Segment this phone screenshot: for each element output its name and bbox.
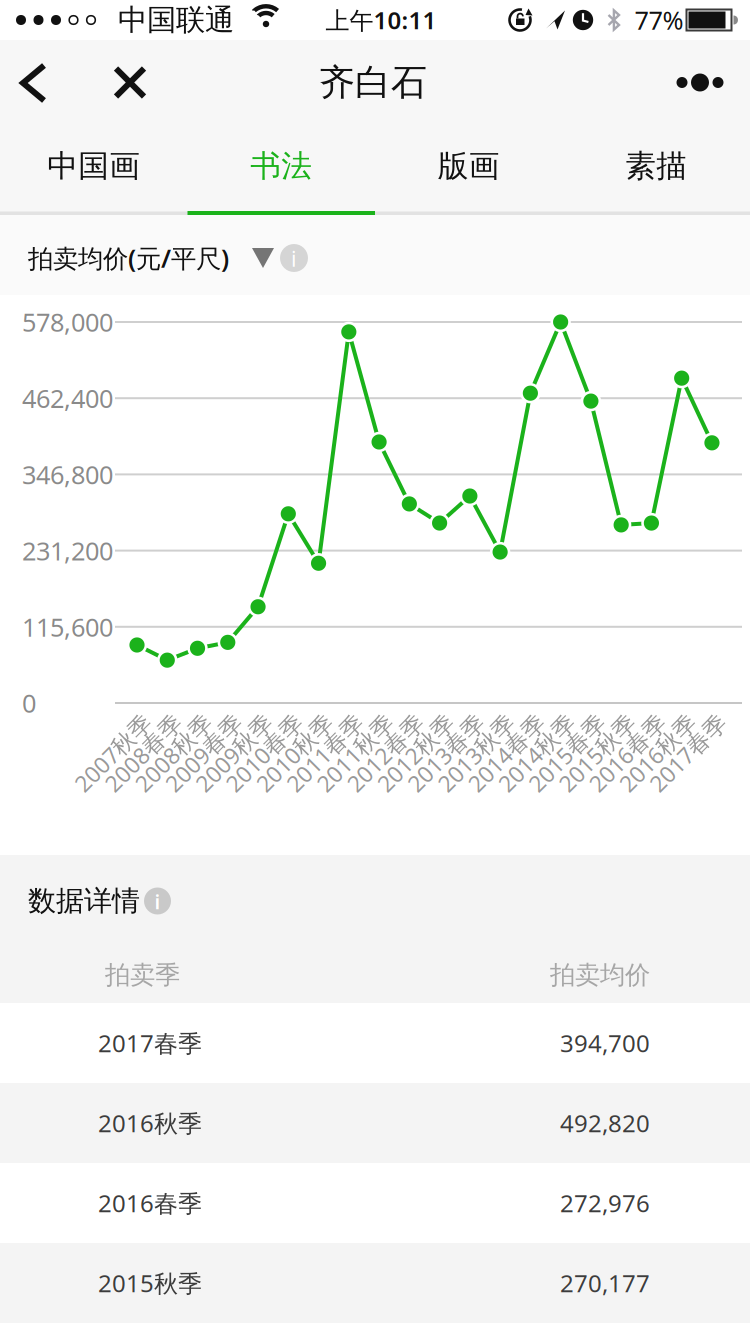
staticText: 2008秋季: [124, 738, 222, 768]
staticText: 上午10:11: [325, 4, 436, 36]
staticText: i: [291, 244, 297, 273]
staticText: 2014春季: [457, 738, 555, 768]
staticText: 书法: [250, 147, 312, 185]
staticText: 231,200: [22, 534, 113, 567]
staticText: 2011秋季: [306, 738, 404, 768]
staticText: 2014秋季: [488, 738, 586, 768]
staticText: 2010春季: [215, 738, 313, 768]
staticText: 数据详情: [28, 884, 140, 918]
staticText: 2013秋季: [427, 738, 525, 768]
staticText: 中国联通: [118, 2, 234, 38]
button[interactable]: More: [675, 57, 725, 107]
button[interactable]: 版画: [375, 125, 562, 207]
staticText: 2016春季: [98, 1187, 202, 1219]
staticText: 492,820: [560, 1107, 650, 1139]
button[interactable]: Back: [11, 57, 61, 107]
staticText: 2007秋季: [64, 738, 162, 768]
staticText: 578,000: [22, 305, 113, 339]
staticText: 115,600: [22, 610, 113, 644]
staticText: 2009春季: [155, 738, 253, 768]
staticText: 0: [22, 686, 36, 720]
button[interactable]: 中国画: [0, 125, 187, 207]
staticText: 462,400: [22, 381, 113, 415]
staticText: 2015春季: [518, 738, 616, 768]
staticText: 2016秋季: [609, 738, 707, 768]
staticText: 77%: [634, 3, 683, 37]
button[interactable]: 素描: [562, 125, 750, 207]
staticText: 2015秋季: [98, 1267, 202, 1299]
staticText: i: [154, 888, 160, 915]
staticText: 346,800: [22, 458, 113, 491]
staticText: 2012秋季: [367, 738, 465, 768]
staticText: 2009秋季: [185, 738, 283, 768]
staticText: 2013春季: [397, 738, 495, 768]
staticText: 270,177: [560, 1267, 650, 1299]
staticText: 2008春季: [94, 738, 192, 768]
button[interactable]: Close: [105, 57, 155, 107]
staticText: 拍卖均价: [550, 959, 650, 990]
staticText: 2017春季: [639, 738, 737, 768]
staticText: 拍卖均价(元/平尺): [28, 241, 229, 275]
staticText: 2011春季: [276, 738, 374, 768]
staticText: 2012春季: [336, 738, 434, 768]
staticText: 版画: [438, 147, 500, 185]
staticText: 272,976: [560, 1187, 650, 1219]
button[interactable]: About the data: [144, 887, 171, 914]
button[interactable]: About this metric: [280, 244, 308, 272]
staticText: 2016秋季: [98, 1107, 202, 1139]
staticText: 拍卖季: [105, 959, 180, 990]
button[interactable]: 书法: [187, 125, 375, 207]
staticText: 2015秋季: [548, 738, 646, 768]
staticText: 394,700: [560, 1027, 650, 1059]
staticText: 素描: [625, 147, 687, 185]
staticText: 2016春季: [578, 738, 676, 768]
staticText: 中国画: [47, 147, 140, 185]
staticText: 2010秋季: [246, 738, 344, 768]
staticText: 2017春季: [98, 1027, 202, 1059]
staticText: 齐白石: [319, 60, 427, 105]
button[interactable]: Choose metric: [239, 233, 280, 283]
